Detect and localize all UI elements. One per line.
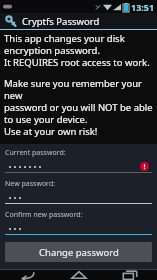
staticText: 13:51 xyxy=(131,1,155,13)
staticText: Make sure you remember your new password… xyxy=(4,77,153,138)
staticText: Current password: xyxy=(5,148,66,158)
button[interactable]: Recent apps xyxy=(106,270,154,280)
button[interactable]: Home xyxy=(55,270,103,280)
button[interactable] xyxy=(5,191,152,204)
other: Error xyxy=(140,162,149,171)
button[interactable]: Change password xyxy=(5,242,152,262)
staticText: New password: xyxy=(5,179,56,189)
staticText: This app changes your disk encryption pa… xyxy=(4,32,150,69)
staticText: Change password xyxy=(39,246,119,259)
staticText: Cryptfs Password xyxy=(22,15,100,28)
staticText: Confirm new password: xyxy=(5,210,83,220)
button[interactable]: Back xyxy=(3,270,51,280)
button[interactable]: Error xyxy=(5,160,152,173)
button[interactable] xyxy=(5,222,152,235)
